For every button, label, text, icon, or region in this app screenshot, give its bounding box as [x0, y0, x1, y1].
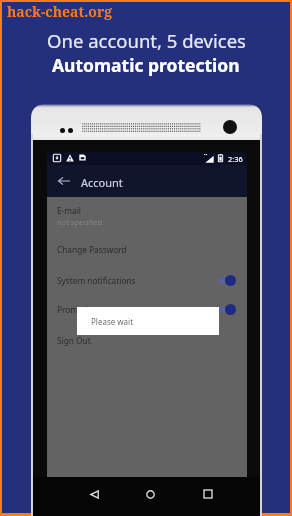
button[interactable]: Recent apps: [201, 487, 215, 501]
button[interactable]: Home: [143, 487, 157, 501]
staticText: hack-cheat.org: [7, 2, 113, 21]
button[interactable]: E-mail: [47, 197, 247, 231]
staticText: Please wait: [91, 316, 134, 327]
button[interactable]: Sign Out: [47, 326, 247, 355]
staticText: One account, 5 devices: [47, 28, 246, 53]
staticText: Account: [81, 175, 123, 190]
staticText: Change Password: [57, 244, 127, 255]
staticText: 2:36: [228, 154, 243, 164]
button[interactable]: Promotions: [47, 295, 247, 324]
staticText: E-mail: [57, 205, 81, 216]
button[interactable]: Back: [87, 487, 101, 501]
button[interactable]: Back: [54, 171, 74, 191]
staticText: System notifications: [57, 275, 136, 286]
staticText: Promotions: [57, 304, 103, 315]
staticText: not specified: [57, 217, 103, 227]
staticText: Sign Out: [57, 335, 91, 346]
button[interactable]: System notifications: [47, 266, 247, 295]
button[interactable]: Change Password: [47, 235, 247, 264]
staticText: Automatic protection: [52, 53, 240, 77]
